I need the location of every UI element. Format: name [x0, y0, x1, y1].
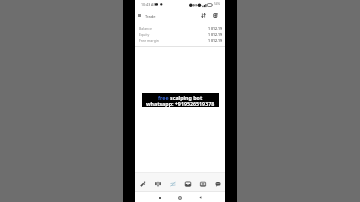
button[interactable]: Home [174, 192, 186, 202]
button[interactable]: Quotes [135, 173, 150, 191]
staticText: Free margin [139, 38, 159, 43]
staticText: 54% [214, 2, 221, 6]
staticText: Equity [139, 32, 150, 37]
staticText: 1 012.19 [208, 26, 222, 31]
staticText: 1 012.19 [208, 38, 222, 43]
button[interactable]: Free margin [139, 37, 222, 43]
staticText: 1 012.19 [208, 32, 222, 37]
button[interactable]: Recents [154, 192, 166, 202]
staticText: 10:43 AM [141, 2, 157, 7]
button[interactable]: New order [211, 11, 220, 20]
button[interactable]: Back [194, 192, 206, 202]
button[interactable]: Chat [210, 173, 225, 191]
staticText: Trade [145, 14, 156, 19]
staticText: free scalping bot [158, 94, 203, 101]
button[interactable]: Charts [150, 173, 165, 191]
button[interactable]: Balance [139, 25, 222, 31]
button[interactable]: History [180, 173, 195, 191]
staticText: Balance [139, 26, 152, 31]
button[interactable]: Equity [139, 31, 222, 37]
button[interactable]: Trade [165, 173, 180, 191]
staticText: whatsapp: +919526519378 [146, 100, 215, 107]
button[interactable]: News [195, 173, 210, 191]
button[interactable]: Sort [199, 11, 208, 20]
button[interactable]: Menu [135, 11, 144, 20]
